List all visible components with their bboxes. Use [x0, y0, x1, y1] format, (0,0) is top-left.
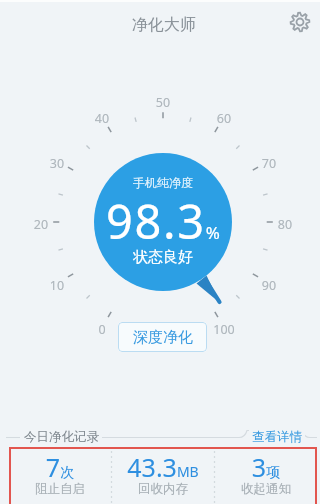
staticText: 43.3MB [112, 450, 214, 484]
staticText: 60 [204, 110, 244, 127]
staticText: 100 [204, 321, 244, 338]
staticText: 0 [82, 321, 122, 338]
staticText: 40 [82, 110, 122, 127]
staticText: 净化大师 [4, 15, 320, 35]
staticText: 70 [249, 155, 289, 172]
staticText: 20 [21, 216, 61, 233]
staticText: 90 [249, 277, 289, 294]
button[interactable]: 43.3MB [112, 447, 214, 504]
button[interactable]: 7次 [9, 447, 111, 504]
staticText: 阻止自启 [9, 481, 111, 497]
staticText: 3项 [215, 450, 317, 484]
button[interactable]: 手机纯净度 [94, 153, 232, 291]
staticText: 7次 [9, 450, 111, 484]
staticText: 手机纯净度 [94, 175, 232, 190]
staticText: 98.3% [94, 189, 232, 253]
button[interactable]: 深度净化 [118, 322, 207, 352]
staticText: 回收内存 [112, 481, 214, 497]
button[interactable]: 3项 [215, 447, 317, 504]
staticText: 状态良好 [94, 248, 232, 267]
staticText: 今日净化记录 [24, 429, 99, 445]
staticText: 50 [143, 94, 183, 111]
staticText: 80 [265, 216, 305, 233]
button[interactable]: Settings [286, 8, 314, 36]
staticText: 查看详情 [252, 429, 302, 445]
staticText: 30 [37, 155, 77, 172]
staticText: 10 [37, 277, 77, 294]
button[interactable]: 查看详情 [252, 429, 302, 445]
staticText: 收起通知 [215, 481, 317, 497]
staticText: 深度净化 [133, 328, 193, 347]
